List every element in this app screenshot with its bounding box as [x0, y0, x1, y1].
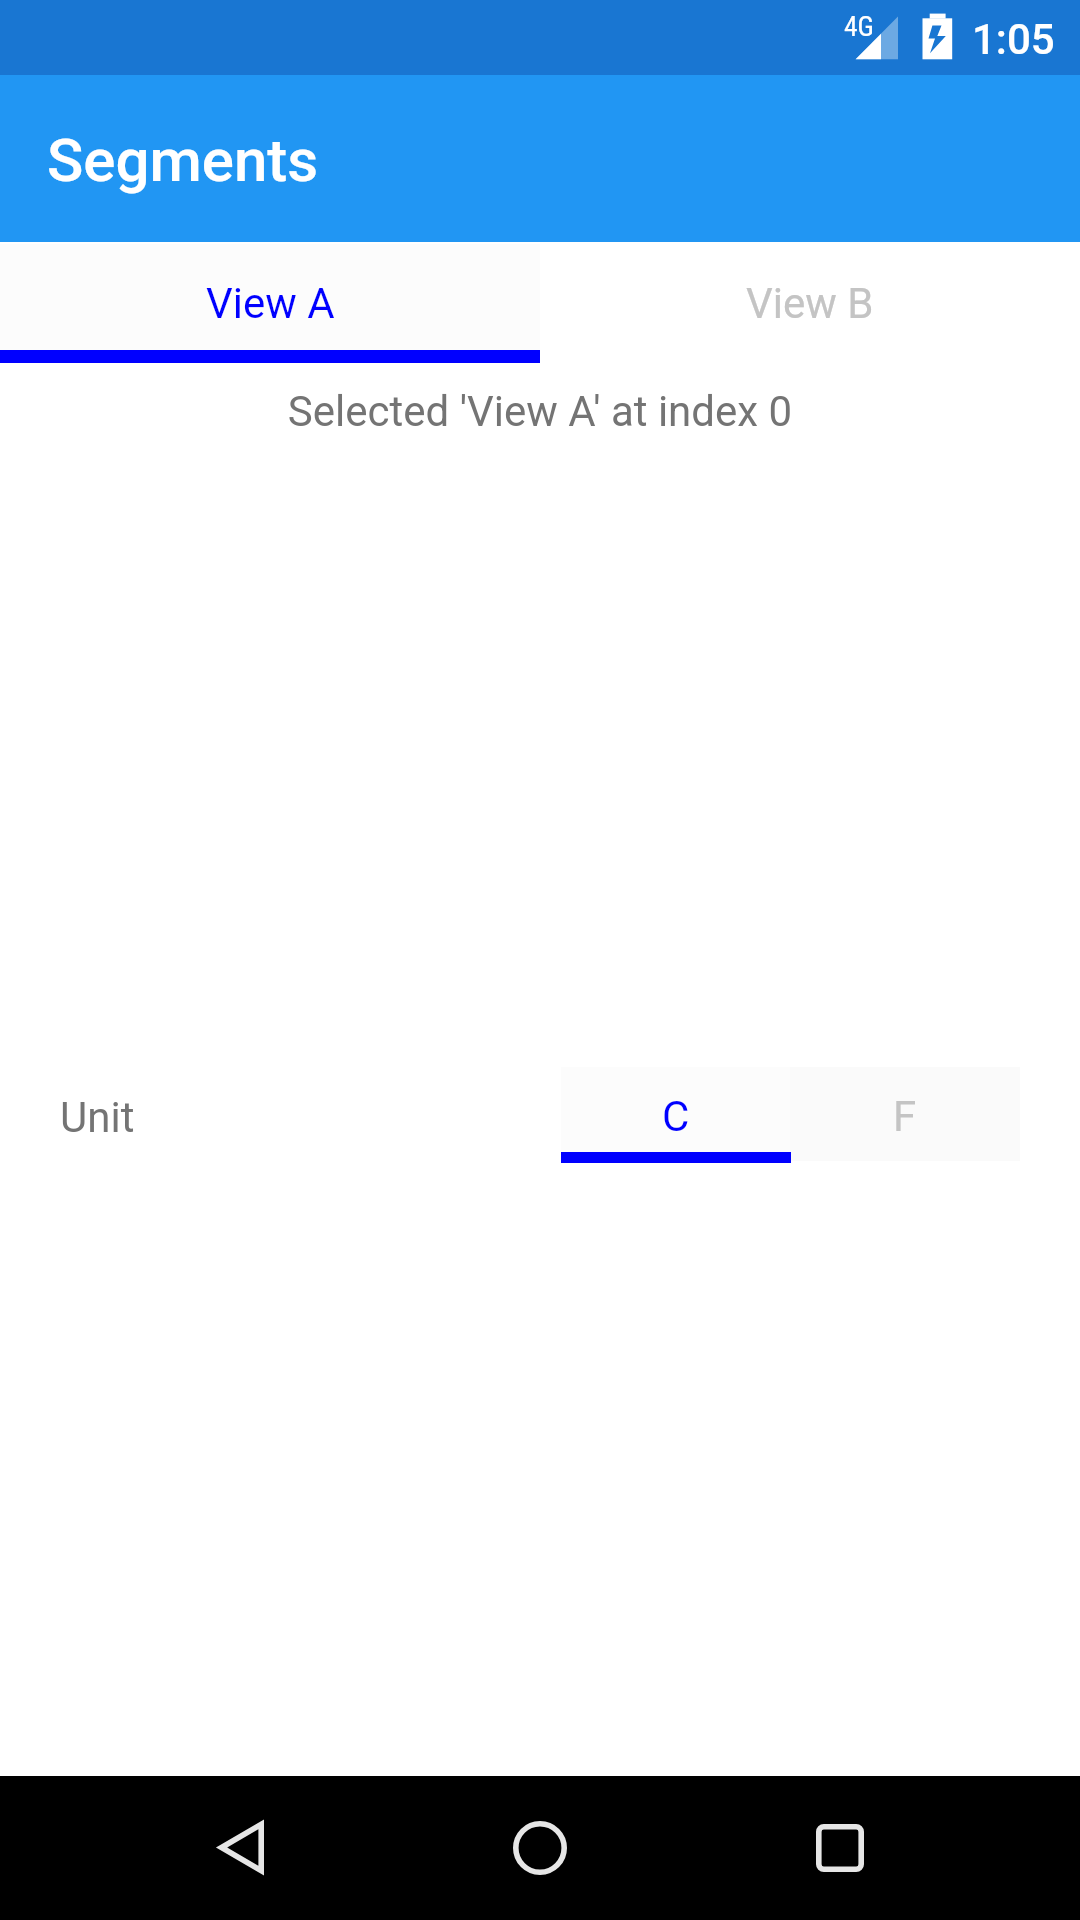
- button[interactable]: Home: [492, 1800, 588, 1896]
- button[interactable]: View B: [540, 244, 1080, 363]
- button[interactable]: Back: [192, 1800, 288, 1896]
- staticText: View B: [746, 279, 874, 328]
- button[interactable]: View A: [0, 244, 540, 363]
- staticText: 4G: [844, 10, 874, 42]
- staticText: Segments: [47, 125, 319, 195]
- staticText: View A: [206, 279, 335, 328]
- button[interactable]: F: [790, 1067, 1020, 1161]
- button[interactable]: C: [561, 1067, 790, 1161]
- staticText: Selected 'View A' at index 0: [0, 387, 1080, 436]
- staticText: 1:05: [972, 15, 1055, 64]
- staticText: C: [662, 1092, 690, 1141]
- button[interactable]: Recent apps: [792, 1800, 888, 1896]
- staticText: Unit: [60, 1093, 135, 1142]
- staticText: F: [893, 1092, 917, 1141]
